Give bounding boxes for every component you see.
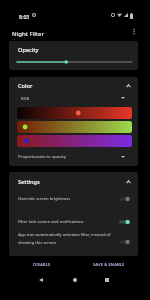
button[interactable]: Collapse color section xyxy=(121,79,135,93)
button[interactable]: Channel slider xyxy=(17,121,132,133)
button[interactable]: More options xyxy=(127,25,140,38)
button[interactable]: Channel slider xyxy=(17,135,132,147)
staticText: 8:03 xyxy=(19,13,30,20)
staticText: RGB xyxy=(21,96,29,101)
staticText: Filter lock screen and notifications xyxy=(18,219,84,225)
button[interactable]: SAVE & ENABLE xyxy=(84,258,134,270)
button[interactable]: Recent apps xyxy=(99,272,115,288)
staticText: Opacity xyxy=(18,46,39,54)
button[interactable]: Channel slider xyxy=(17,107,132,119)
button[interactable]: Collapse settings section xyxy=(121,175,135,189)
button[interactable]: Home xyxy=(67,272,83,288)
staticText: App icon automatically activates filter,… xyxy=(18,232,111,245)
button[interactable]: Toggle on xyxy=(119,219,130,225)
staticText: SAVE & ENABLE xyxy=(93,261,125,267)
staticText: Night Filter xyxy=(12,29,44,37)
staticText: Override screen brightness xyxy=(18,196,71,202)
button[interactable]: Opacity mode xyxy=(116,150,130,164)
button[interactable]: Back xyxy=(33,272,49,288)
button[interactable]: Toggle off xyxy=(119,196,130,202)
button[interactable] xyxy=(15,57,134,67)
button[interactable] xyxy=(10,215,136,228)
staticText: Settings xyxy=(18,178,40,186)
button[interactable]: Color mode xyxy=(116,91,130,105)
button[interactable] xyxy=(10,192,136,205)
staticText: Proportionate to opacity xyxy=(18,154,66,160)
button[interactable]: DISABLE xyxy=(26,258,57,270)
button[interactable] xyxy=(10,232,136,250)
staticText: DISABLE xyxy=(33,261,51,267)
staticText: Color xyxy=(18,82,33,90)
button[interactable]: Toggle off xyxy=(119,239,130,245)
